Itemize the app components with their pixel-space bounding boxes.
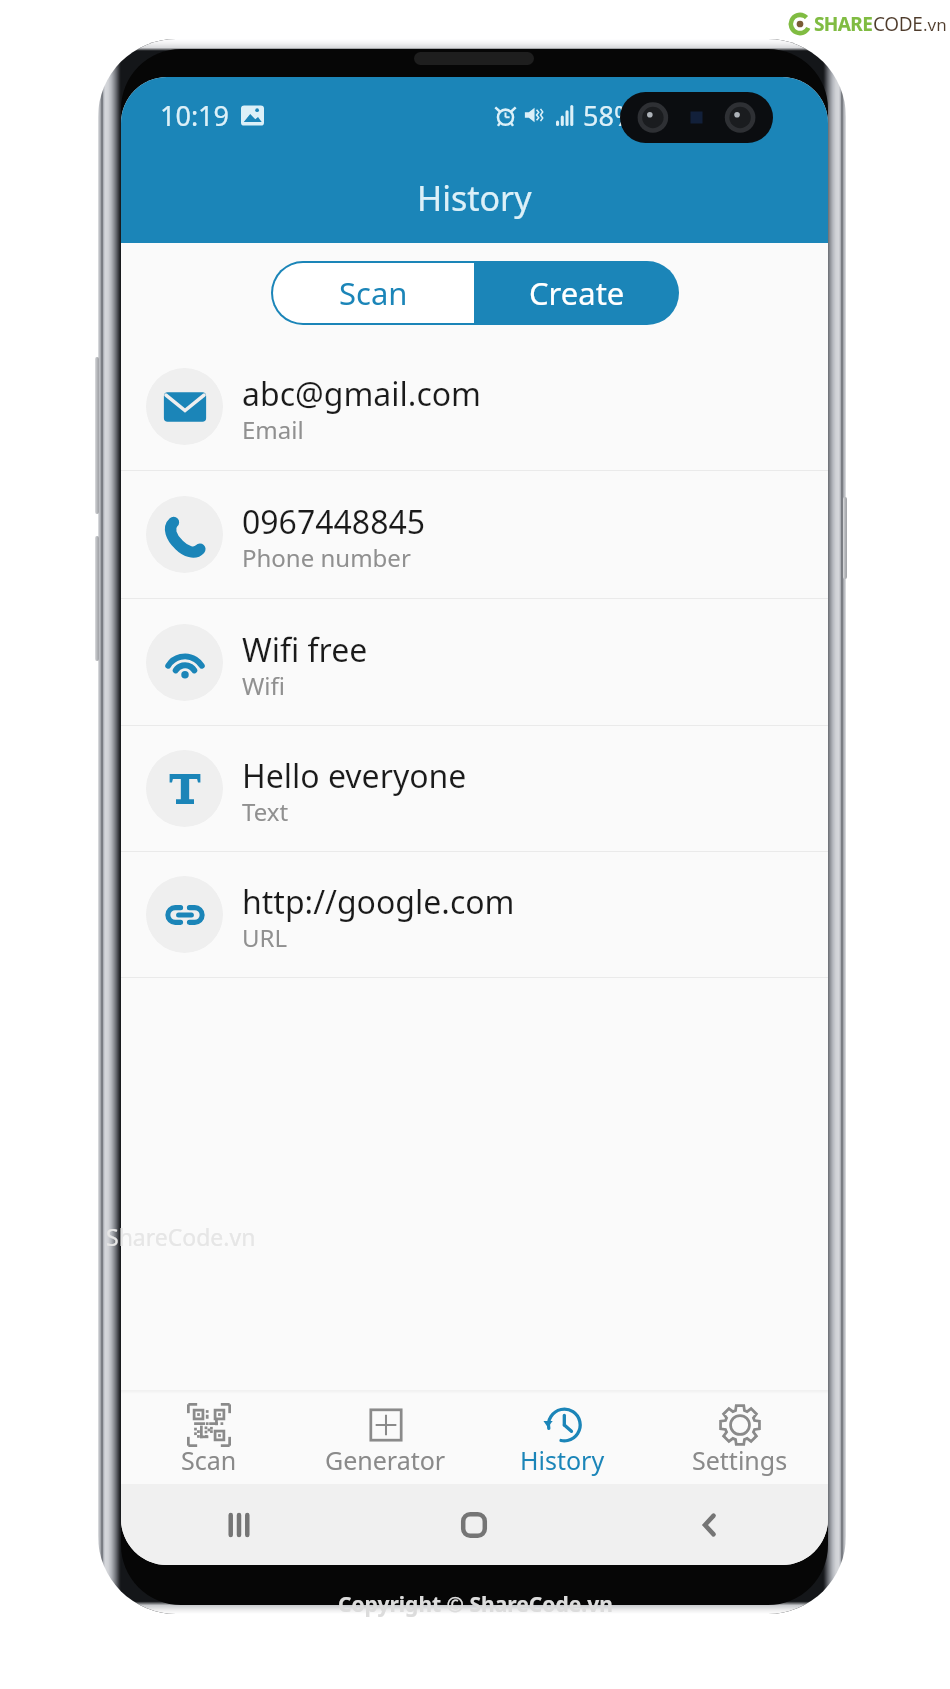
- button[interactable]: History: [474, 1390, 651, 1484]
- staticText: Create: [529, 272, 625, 314]
- staticText: Phone number: [242, 541, 411, 574]
- button[interactable]: Scan: [273, 263, 474, 323]
- staticText: http://google.com: [242, 880, 515, 924]
- staticText: Hello everyone: [242, 754, 467, 798]
- staticText: .vn: [923, 13, 947, 36]
- staticText: Scan: [181, 1443, 237, 1477]
- staticText: Wifi free: [242, 628, 368, 672]
- staticText: Wifi: [242, 669, 285, 702]
- button[interactable]: abc@gmail.com: [121, 343, 828, 470]
- button[interactable]: Create: [474, 261, 679, 325]
- button[interactable]: Scan: [121, 1390, 297, 1484]
- staticText: Text: [242, 795, 289, 828]
- staticText: 0967448845: [242, 500, 426, 544]
- staticText: SHARE: [814, 11, 873, 37]
- button[interactable]: Recents: [121, 1484, 356, 1565]
- staticText: Settings: [692, 1443, 788, 1477]
- staticText: History: [520, 1443, 605, 1477]
- button[interactable]: Generator: [297, 1390, 474, 1484]
- button[interactable]: Home: [356, 1484, 592, 1565]
- staticText: CODE: [873, 11, 923, 37]
- button[interactable]: Wifi free: [121, 599, 828, 725]
- staticText: Email: [242, 413, 304, 446]
- staticText: 10:19: [160, 97, 230, 134]
- staticText: URL: [242, 921, 288, 954]
- button[interactable]: Back: [592, 1484, 828, 1565]
- staticText: Scan: [339, 272, 408, 314]
- staticText: abc@gmail.com: [242, 372, 482, 416]
- staticText: History: [417, 175, 532, 221]
- staticText: Copyright © ShareCode.vn: [338, 1590, 613, 1619]
- staticText: 58%: [583, 97, 637, 134]
- button[interactable]: Hello everyone: [121, 726, 828, 851]
- button[interactable]: 0967448845: [121, 471, 828, 598]
- staticText: ShareCode.vn: [106, 1221, 256, 1252]
- staticText: Generator: [325, 1443, 446, 1477]
- button[interactable]: Settings: [651, 1390, 828, 1484]
- button[interactable]: http://google.com: [121, 852, 828, 977]
